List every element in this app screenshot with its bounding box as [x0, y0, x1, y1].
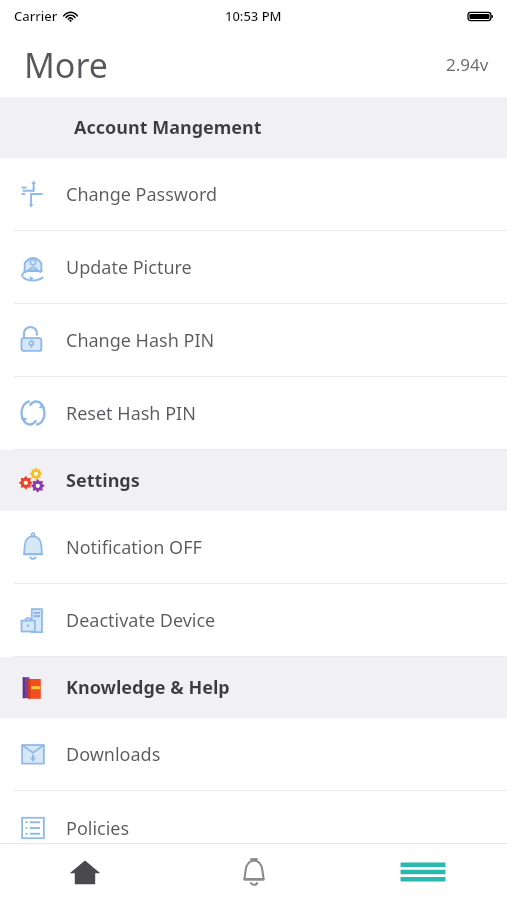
staticText: 10:53 PM [225, 7, 282, 25]
button[interactable]: Update Picture [0, 231, 507, 304]
button[interactable]: Home [0, 844, 169, 900]
button[interactable]: Settings [0, 450, 507, 511]
button[interactable]: Change Hash PIN [0, 304, 507, 377]
staticText: Carrier [14, 7, 58, 25]
staticText: Notification OFF [66, 535, 202, 560]
button[interactable]: Reset Hash PIN [0, 377, 507, 450]
staticText: 2.94v [446, 53, 489, 76]
button[interactable]: Account Mangement [0, 97, 507, 158]
button[interactable]: Menu [338, 844, 507, 900]
staticText: More [24, 42, 108, 88]
button[interactable]: Policies [0, 791, 507, 865]
button[interactable]: Notification OFF [0, 511, 507, 584]
staticText: Deactivate Device [66, 608, 216, 633]
button[interactable]: Notifications [169, 844, 338, 900]
staticText: Reset Hash PIN [66, 401, 196, 426]
staticText: Update Picture [66, 255, 192, 280]
staticText: Policies [66, 816, 130, 841]
button[interactable]: Deactivate Device [0, 584, 507, 657]
button[interactable]: Downloads [0, 718, 507, 791]
staticText: Change Password [66, 182, 218, 207]
staticText: Knowledge & Help [66, 675, 230, 700]
staticText: Account Mangement [74, 115, 262, 140]
staticText: Settings [66, 468, 140, 493]
button[interactable]: Change Password [0, 158, 507, 231]
staticText: Downloads [66, 742, 161, 767]
button[interactable]: Knowledge & Help [0, 657, 507, 718]
staticText: Change Hash PIN [66, 328, 215, 353]
